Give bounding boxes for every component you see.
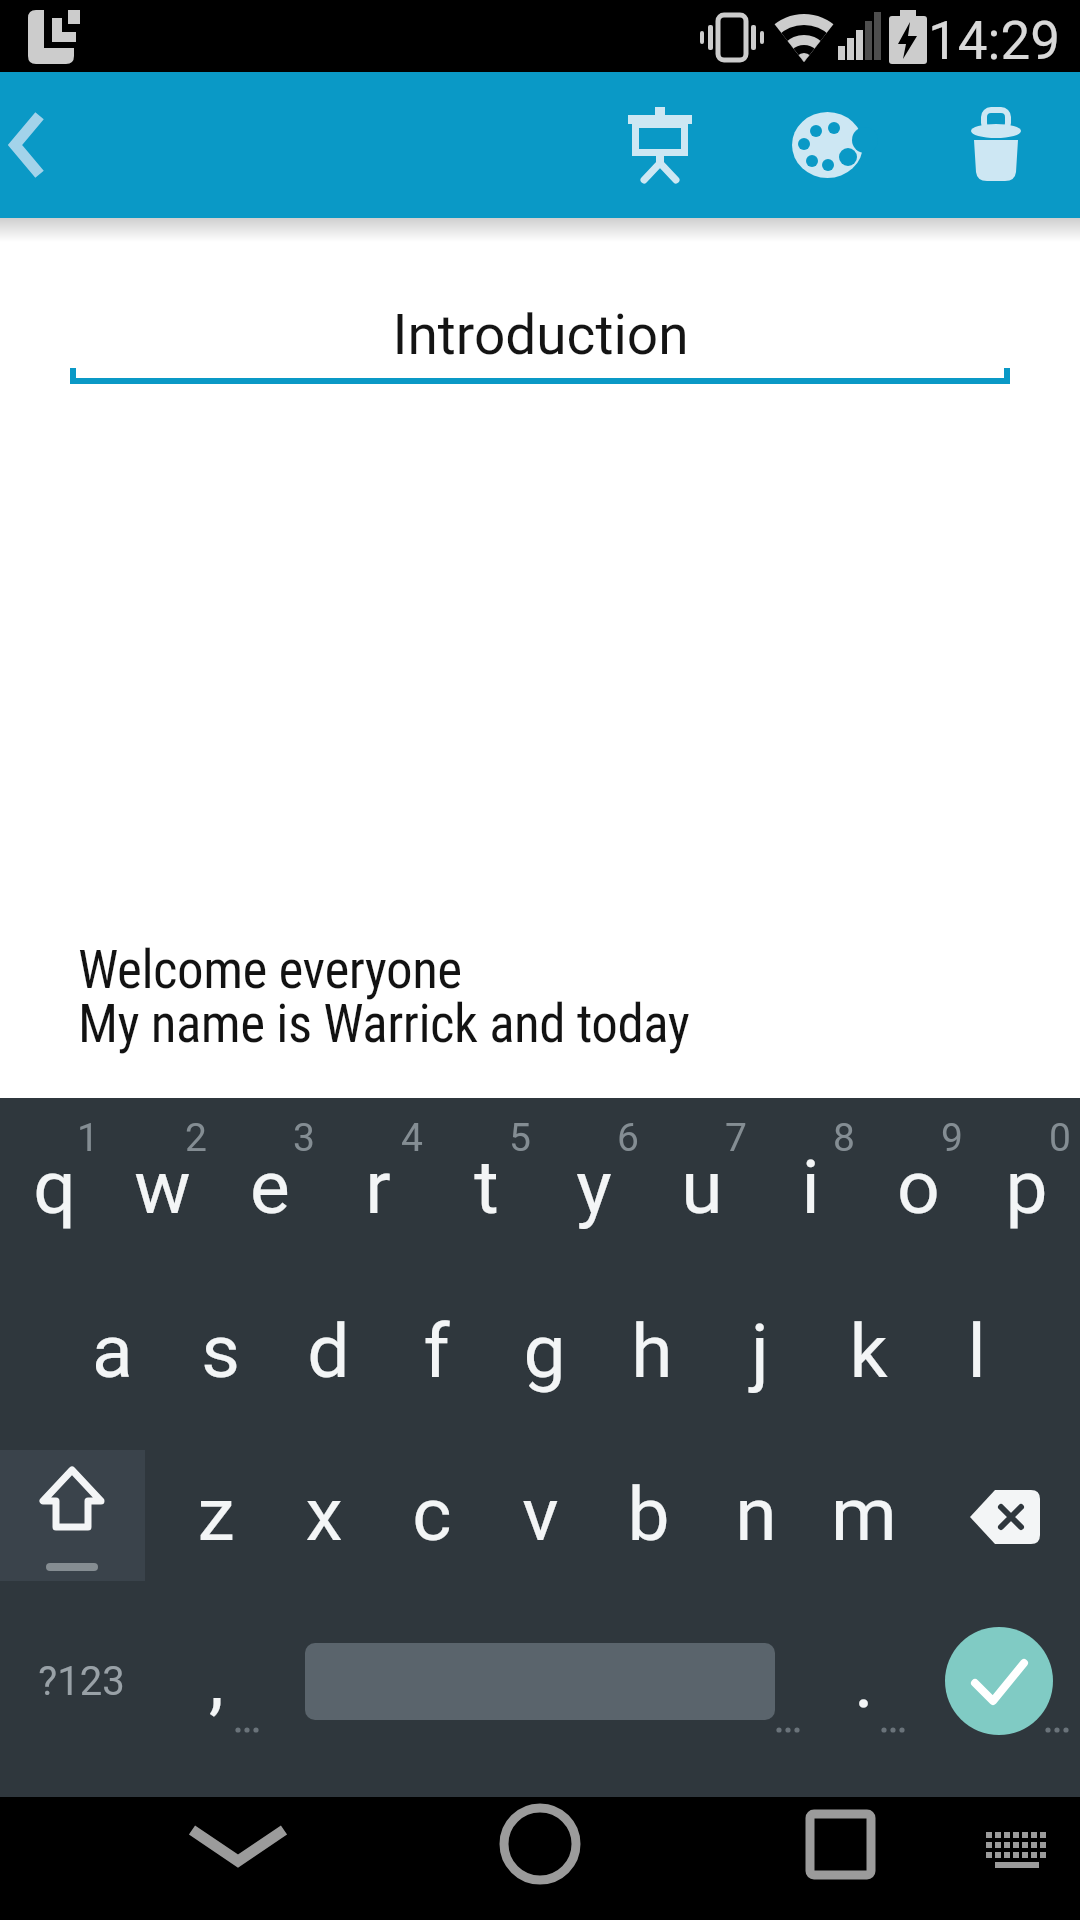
staticText: m bbox=[831, 1470, 897, 1558]
button[interactable]: k bbox=[814, 1278, 922, 1424]
staticText: 7 bbox=[725, 1115, 747, 1161]
staticText: v bbox=[522, 1470, 559, 1558]
staticText: x bbox=[305, 1470, 343, 1558]
button[interactable]: n bbox=[702, 1441, 810, 1587]
button[interactable] bbox=[0, 72, 70, 218]
button[interactable]: r bbox=[324, 1114, 432, 1260]
staticText: 1 bbox=[77, 1115, 99, 1161]
staticText: . bbox=[854, 1637, 874, 1725]
button[interactable]: x bbox=[270, 1441, 378, 1587]
staticText: 4 bbox=[401, 1115, 423, 1161]
staticText: b bbox=[627, 1470, 670, 1558]
button[interactable]: f bbox=[382, 1278, 490, 1424]
staticText: , bbox=[209, 1636, 224, 1724]
staticText: t bbox=[474, 1143, 499, 1231]
staticText: 2 bbox=[185, 1115, 207, 1161]
button[interactable]: g bbox=[490, 1278, 598, 1424]
button[interactable] bbox=[600, 90, 716, 206]
button[interactable]: p bbox=[972, 1114, 1080, 1260]
button[interactable] bbox=[10, 1450, 134, 1588]
button[interactable]: . bbox=[810, 1608, 918, 1754]
staticText: z bbox=[197, 1470, 235, 1558]
button[interactable]: y bbox=[540, 1114, 648, 1260]
staticText: j bbox=[751, 1307, 769, 1395]
staticText: f bbox=[423, 1307, 450, 1395]
button[interactable] bbox=[935, 90, 1051, 206]
staticText: 5 bbox=[509, 1115, 531, 1161]
staticText: i bbox=[801, 1143, 820, 1231]
button[interactable]: m bbox=[810, 1441, 918, 1587]
button[interactable]: d bbox=[274, 1278, 382, 1424]
button[interactable]: a bbox=[58, 1278, 166, 1424]
button[interactable]: t bbox=[432, 1114, 540, 1260]
staticText: y bbox=[576, 1143, 612, 1231]
button[interactable]: c bbox=[378, 1441, 486, 1587]
staticText: s bbox=[201, 1307, 240, 1395]
staticText: 0 bbox=[1049, 1115, 1071, 1161]
staticText: ?123 bbox=[38, 1658, 125, 1705]
button[interactable]: b bbox=[594, 1441, 702, 1587]
staticText: d bbox=[307, 1307, 350, 1395]
staticText: k bbox=[849, 1307, 888, 1395]
staticText: r bbox=[365, 1143, 391, 1231]
staticText: q bbox=[33, 1143, 76, 1231]
button[interactable]: l bbox=[922, 1278, 1030, 1424]
staticText: l bbox=[967, 1307, 986, 1395]
button[interactable] bbox=[943, 1450, 1067, 1588]
staticText: w bbox=[134, 1143, 191, 1231]
staticText: 9 bbox=[941, 1115, 963, 1161]
staticText: u bbox=[681, 1143, 723, 1231]
staticText: 8 bbox=[833, 1115, 855, 1161]
staticText: Welcome everyone My name is Warrick and … bbox=[78, 939, 690, 1055]
button[interactable]: j bbox=[706, 1278, 814, 1424]
button[interactable]: i bbox=[756, 1114, 864, 1260]
staticText: 14:29 bbox=[928, 10, 1060, 66]
staticText: 3 bbox=[293, 1115, 315, 1161]
button[interactable] bbox=[480, 1797, 600, 1920]
staticText: p bbox=[1005, 1143, 1048, 1231]
button[interactable] bbox=[960, 1797, 1070, 1920]
staticText: a bbox=[92, 1307, 133, 1395]
button[interactable]: h bbox=[598, 1278, 706, 1424]
staticText: 6 bbox=[617, 1115, 639, 1161]
button[interactable]: q bbox=[0, 1114, 108, 1260]
button[interactable] bbox=[766, 90, 882, 206]
button[interactable] bbox=[945, 1627, 1053, 1735]
button[interactable]: e bbox=[216, 1114, 324, 1260]
button[interactable]: v bbox=[486, 1441, 594, 1587]
button[interactable]: ?123 bbox=[16, 1608, 146, 1754]
button[interactable] bbox=[168, 1797, 308, 1920]
staticText: Introduction bbox=[392, 303, 689, 367]
button[interactable] bbox=[780, 1797, 900, 1920]
staticText: h bbox=[631, 1307, 673, 1395]
button[interactable]: s bbox=[166, 1278, 274, 1424]
staticText: c bbox=[412, 1470, 452, 1558]
button[interactable]: w bbox=[108, 1114, 216, 1260]
button[interactable]: z bbox=[162, 1441, 270, 1587]
button[interactable]: o bbox=[864, 1114, 972, 1260]
staticText: e bbox=[250, 1143, 290, 1231]
staticText: n bbox=[735, 1470, 777, 1558]
button[interactable]: , bbox=[162, 1607, 270, 1753]
staticText: g bbox=[523, 1307, 566, 1395]
staticText: o bbox=[897, 1143, 940, 1231]
button[interactable]: u bbox=[648, 1114, 756, 1260]
